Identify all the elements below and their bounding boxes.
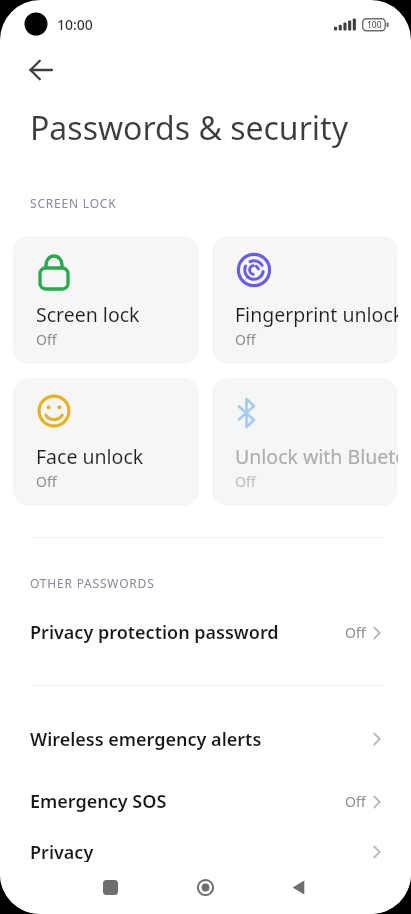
button[interactable]: Privacy protection password <box>0 602 411 662</box>
staticText: Off <box>235 330 256 349</box>
staticText: OTHER PASSWORDS <box>30 575 155 591</box>
button[interactable]: Fingerprint unlock <box>212 236 398 364</box>
button[interactable] <box>274 863 322 911</box>
staticText: 100 <box>367 19 382 31</box>
button[interactable]: Face unlock <box>13 378 199 506</box>
button[interactable] <box>181 863 229 911</box>
staticText: Off <box>36 330 57 349</box>
button[interactable]: Screen lock <box>13 236 199 364</box>
button[interactable]: Emergency SOS <box>0 771 411 831</box>
staticText: Face unlock <box>36 443 144 470</box>
staticText: Privacy <box>30 840 94 865</box>
staticText: Off <box>36 472 57 491</box>
staticText: Passwords & security <box>30 106 348 150</box>
staticText: Off <box>345 623 366 642</box>
staticText: Privacy protection password <box>30 620 279 645</box>
button[interactable]: Unlock with Bluetooth device <box>212 378 398 506</box>
staticText: Unlock with Bluetooth device <box>235 443 398 470</box>
button[interactable] <box>17 46 65 94</box>
staticText: Off <box>235 472 256 491</box>
staticText: Screen lock <box>36 301 140 328</box>
button[interactable] <box>86 863 134 911</box>
button[interactable]: Privacy <box>0 822 411 882</box>
staticText: Fingerprint unlock <box>235 301 398 328</box>
staticText: Wireless emergency alerts <box>30 727 262 752</box>
staticText: Off <box>345 792 366 811</box>
button[interactable]: Wireless emergency alerts <box>0 709 411 769</box>
staticText: SCREEN LOCK <box>30 195 117 211</box>
staticText: 10:00 <box>57 15 93 34</box>
staticText: Emergency SOS <box>30 789 167 814</box>
